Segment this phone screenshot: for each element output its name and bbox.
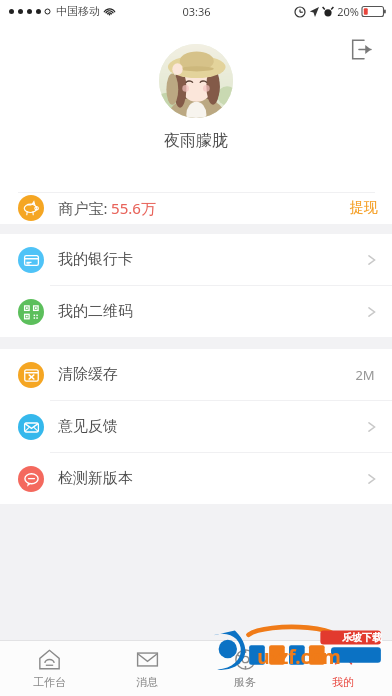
button[interactable] <box>159 44 233 118</box>
button[interactable]: 消息 <box>98 641 196 696</box>
button[interactable]: Sign out <box>344 32 378 66</box>
staticText: 夜雨朦胧 <box>164 131 228 151</box>
button[interactable]: 工作台 <box>0 641 98 696</box>
staticText: 商户宝: <box>58 198 108 218</box>
staticText: 我的 <box>332 675 354 689</box>
button[interactable]: 服务 <box>196 641 294 696</box>
staticText: 服务 <box>234 675 256 689</box>
button[interactable]: 我的 <box>294 641 392 696</box>
staticText: 提现 <box>350 199 378 217</box>
staticText: 20% <box>337 4 359 19</box>
staticText: 03:36 <box>182 4 211 19</box>
staticText: 检测新版本 <box>58 469 133 488</box>
staticText: 乐坡下载 <box>342 631 382 644</box>
button[interactable]: 意见反馈 <box>0 401 392 452</box>
staticText: 55.6万 <box>111 198 156 218</box>
staticText: 清除缓存 <box>58 365 118 384</box>
staticText: 消息 <box>136 675 158 689</box>
button[interactable]: 我的银行卡 <box>0 234 392 285</box>
staticText: 工作台 <box>33 675 66 689</box>
button[interactable]: 检测新版本 <box>0 453 392 504</box>
staticText: uzzf.com <box>257 644 341 670</box>
button[interactable]: 我的二维码 <box>0 286 392 337</box>
staticText: 2M <box>355 366 375 384</box>
staticText: 意见反馈 <box>58 417 118 436</box>
button[interactable]: 商户宝: <box>0 192 392 224</box>
button[interactable]: 清除缓存 <box>0 349 392 400</box>
staticText: 中国移动 <box>56 4 100 18</box>
staticText: 我的银行卡 <box>58 250 133 269</box>
staticText: 我的二维码 <box>58 302 133 321</box>
